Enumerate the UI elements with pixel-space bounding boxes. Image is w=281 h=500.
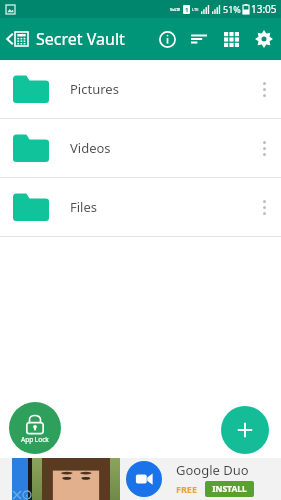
staticText: Google Duo	[176, 461, 249, 479]
staticText: VoLTE	[170, 7, 181, 12]
button[interactable]: Files	[0, 178, 281, 236]
button[interactable]: Settings	[247, 22, 281, 56]
button[interactable]: Info	[151, 23, 183, 55]
button[interactable]: More options for Videos	[247, 119, 281, 177]
button[interactable]: Google Duo	[0, 458, 281, 500]
button[interactable]: Back to calculator	[0, 24, 32, 54]
button[interactable]: App Lock	[9, 402, 61, 454]
staticText: App Lock	[21, 435, 49, 444]
staticText: FREE	[176, 483, 197, 495]
button[interactable]: Pictures	[0, 60, 281, 118]
staticText: Pictures	[70, 80, 119, 98]
staticText: 51%	[223, 3, 241, 15]
staticText: Videos	[70, 139, 111, 157]
staticText: INSTALL	[212, 483, 247, 495]
button[interactable]: Videos	[0, 119, 281, 177]
button[interactable]: Sort	[183, 23, 215, 55]
button[interactable]: More options for Files	[247, 178, 281, 236]
button[interactable]: Add	[221, 406, 269, 454]
staticText: Secret Vault	[36, 28, 125, 50]
button[interactable]: Grid view	[215, 23, 247, 55]
staticText: 1	[185, 6, 189, 14]
staticText: Files	[70, 198, 98, 216]
staticText: LTE	[192, 7, 199, 12]
button[interactable]: More options for Pictures	[247, 60, 281, 118]
staticText: 13:05	[251, 2, 277, 16]
button[interactable]: INSTALL	[205, 481, 254, 497]
